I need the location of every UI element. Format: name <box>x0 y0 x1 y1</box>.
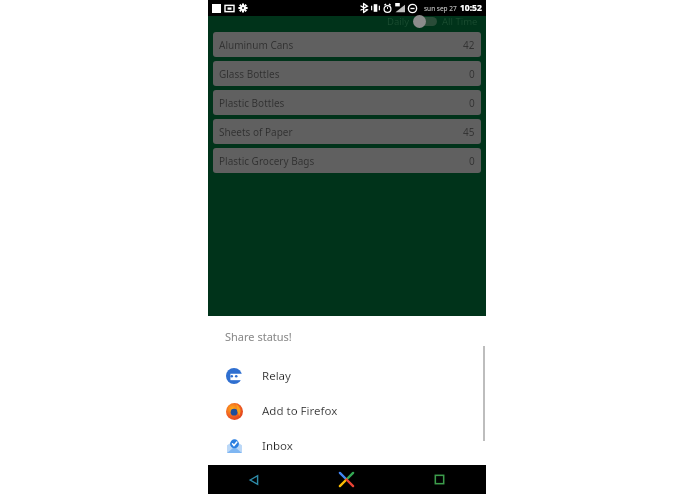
button[interactable]: Relay <box>208 358 486 393</box>
staticText: Daily <box>387 15 410 28</box>
button[interactable]: Plastic Grocery Bags <box>213 148 481 173</box>
staticText: All Time <box>442 15 478 28</box>
staticText: Plastic Bottles <box>219 96 469 110</box>
button[interactable]: Recent apps <box>393 465 486 494</box>
button[interactable]: Home <box>300 465 393 494</box>
staticText: 0 <box>469 96 475 110</box>
staticText: 10:52 <box>460 2 482 14</box>
button[interactable]: Aluminum Cans <box>213 32 481 57</box>
staticText: Aluminum Cans <box>219 38 463 52</box>
staticText: Share status! <box>225 329 292 344</box>
button[interactable]: Add to Firefox <box>208 393 486 428</box>
staticText: Relay <box>262 368 291 384</box>
staticText: 0 <box>469 67 475 81</box>
button[interactable]: Copy to clipboard <box>208 463 486 494</box>
staticText: sun sep 27 <box>424 4 457 13</box>
staticText: Add to Firefox <box>262 403 338 419</box>
button[interactable]: Back <box>208 465 300 494</box>
button[interactable]: Plastic Bottles <box>213 90 481 115</box>
staticText: Inbox <box>262 438 293 454</box>
staticText: 45 <box>463 125 475 139</box>
button[interactable]: Daily <box>387 14 478 28</box>
staticText: 42 <box>463 38 475 52</box>
button[interactable]: Glass Bottles <box>213 61 481 86</box>
staticText: Plastic Grocery Bags <box>219 154 469 168</box>
button[interactable]: Sheets of Paper <box>213 119 481 144</box>
button[interactable]: Inbox <box>208 428 486 463</box>
staticText: Sheets of Paper <box>219 125 463 139</box>
staticText: Glass Bottles <box>219 67 469 81</box>
staticText: Copy to clipboard <box>262 471 357 487</box>
staticText: 0 <box>469 154 475 168</box>
